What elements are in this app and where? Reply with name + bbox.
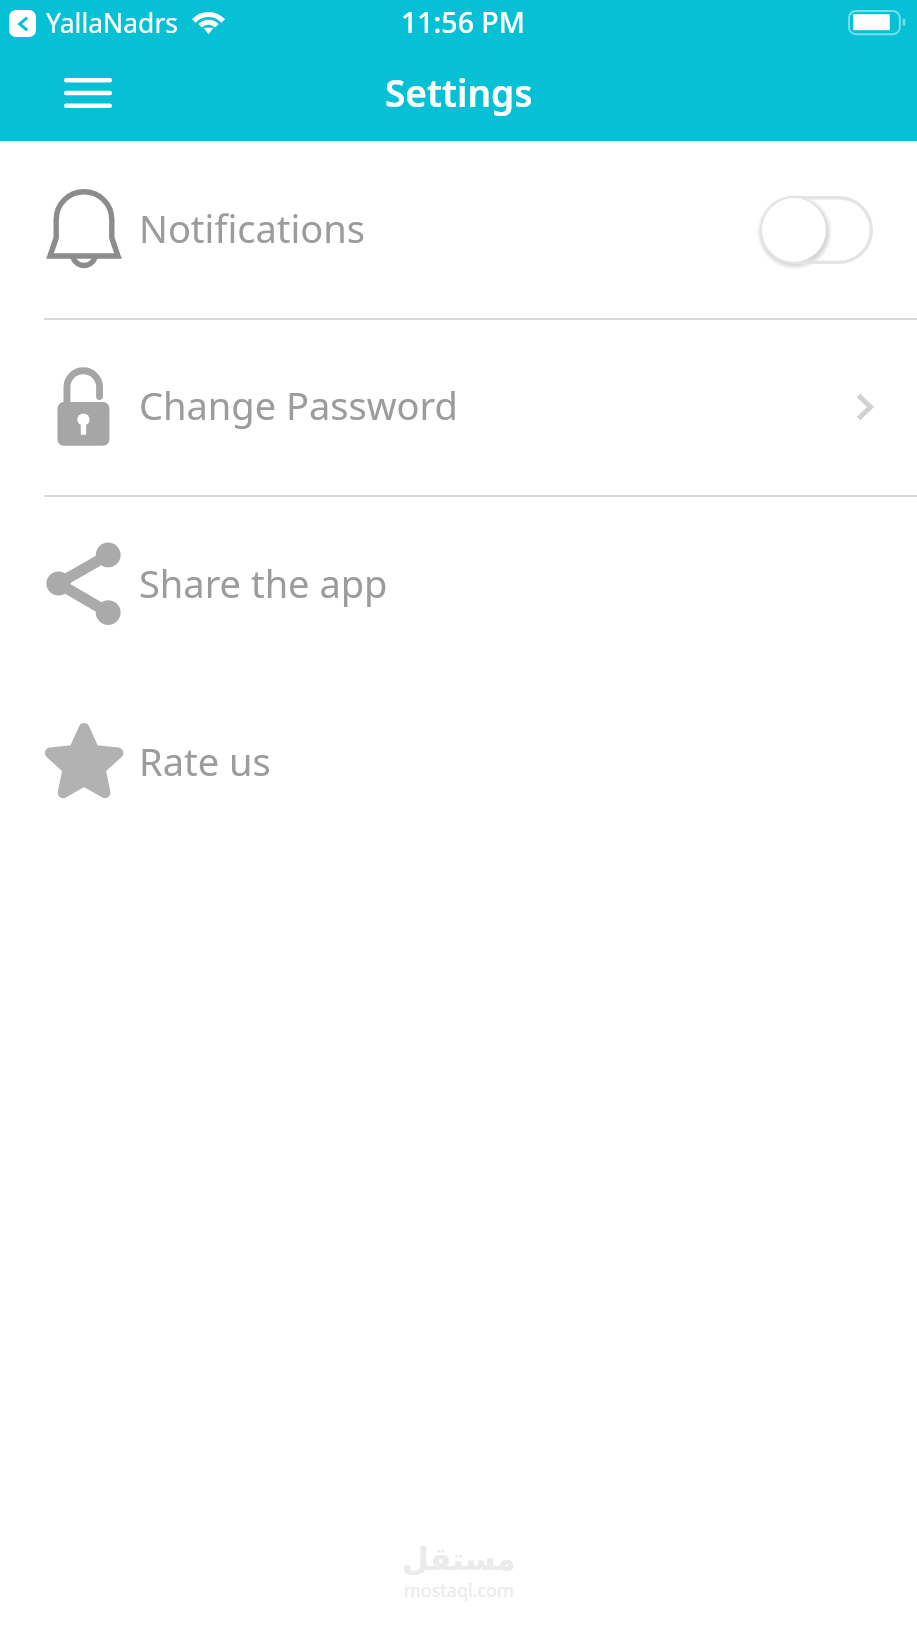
button[interactable]: Back to YallaNadrs — [9, 10, 36, 37]
staticText: 11:56 PM — [401, 3, 525, 42]
button[interactable]: Rate us — [0, 674, 917, 852]
staticText: YallaNadrs — [46, 5, 179, 41]
staticText: Notifications — [139, 202, 366, 254]
button[interactable]: Notifications toggle — [757, 193, 873, 267]
staticText: Rate us — [139, 735, 271, 787]
staticText: mostaql.com — [404, 1578, 514, 1603]
button[interactable]: Menu — [43, 57, 133, 129]
button[interactable]: Share the app — [0, 496, 917, 674]
staticText: مستقل — [402, 1541, 516, 1577]
button[interactable]: Notifications — [0, 141, 917, 319]
staticText: Share the app — [139, 557, 388, 609]
button[interactable]: Change Password — [0, 318, 917, 496]
staticText: Change Password — [139, 379, 458, 431]
staticText: Settings — [385, 67, 533, 117]
